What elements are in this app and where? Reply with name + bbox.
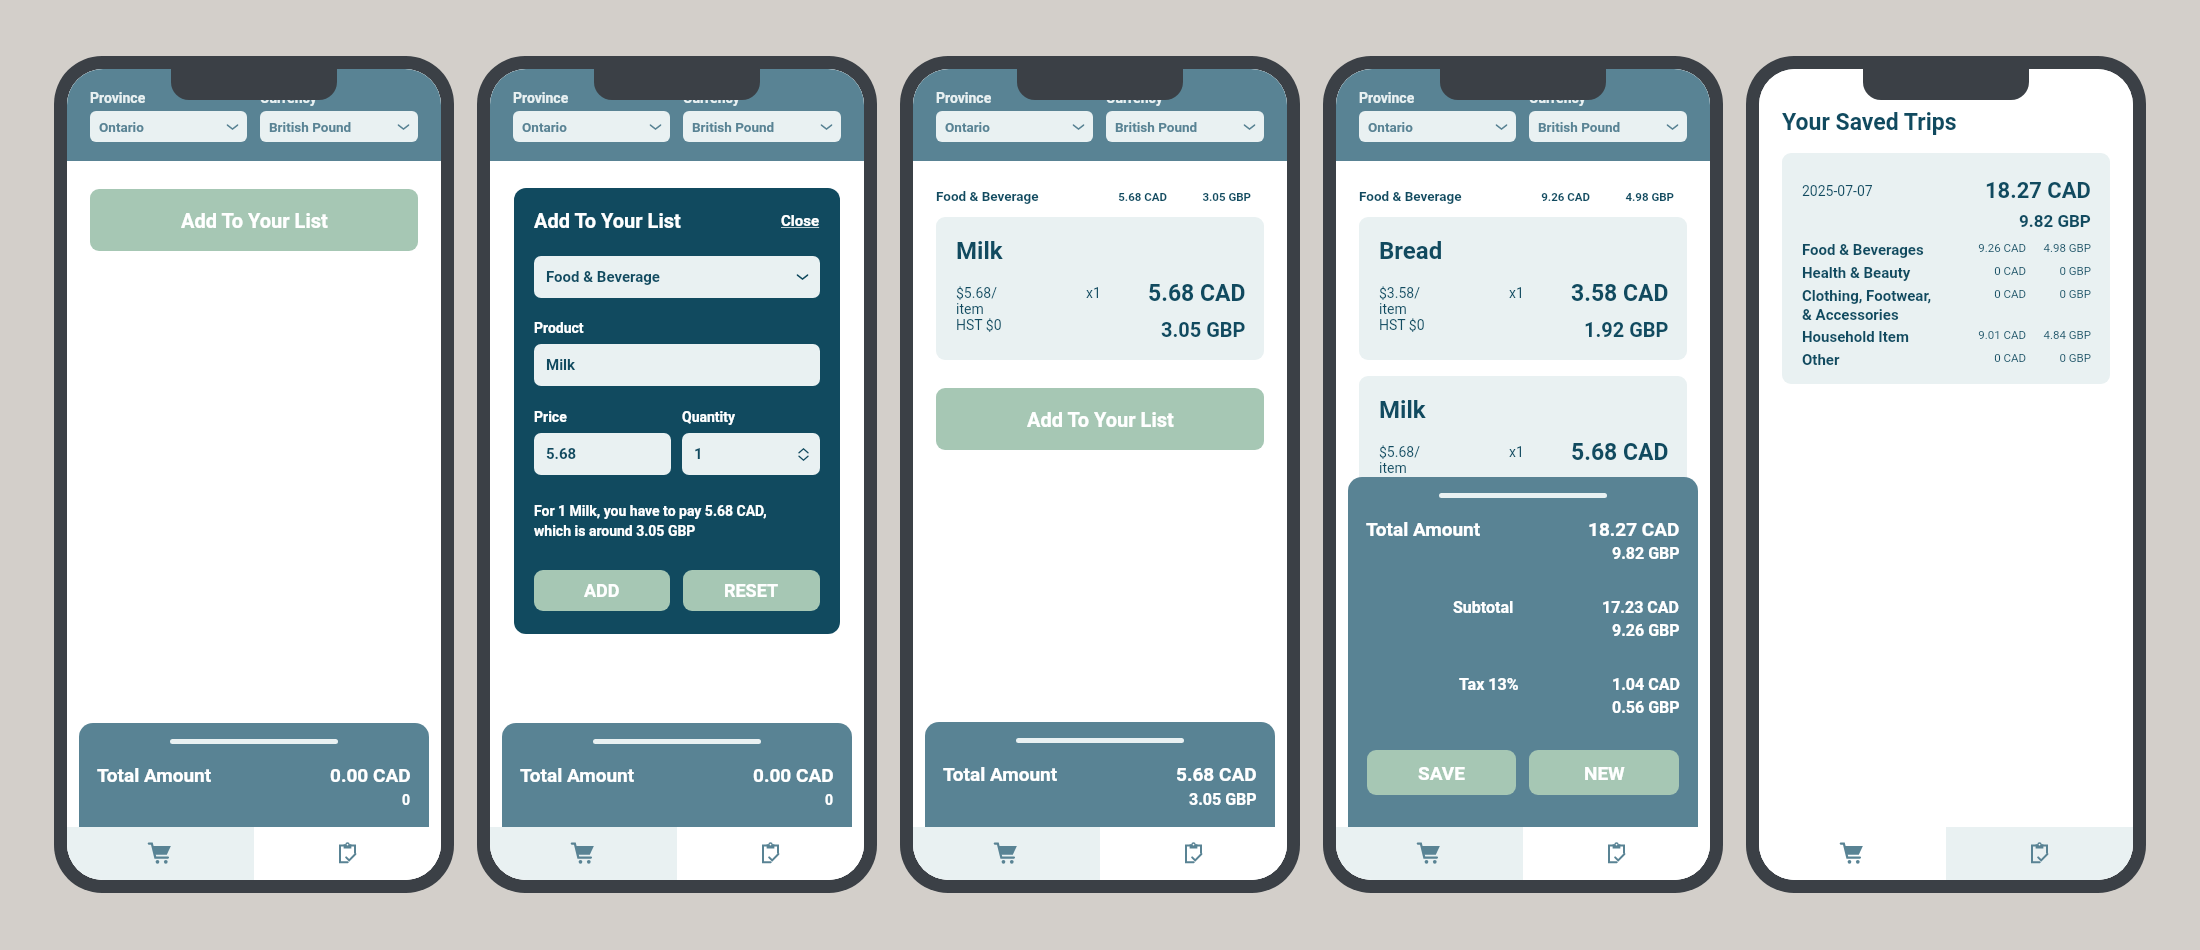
staticText: Add To Your List (181, 209, 328, 232)
staticText: Other (1802, 351, 1976, 369)
staticText: 0.00 CAD (330, 764, 411, 786)
staticText: NEW (1584, 762, 1625, 784)
staticText: 9.82 GBP (1612, 544, 1680, 563)
button[interactable]: Close (781, 212, 820, 230)
button[interactable]: RESET (683, 570, 820, 611)
staticText: Subtotal (1453, 598, 1514, 617)
button[interactable]: Saved trips (677, 827, 864, 880)
staticText: 5.68 (546, 445, 577, 463)
staticText: 9.82 GBP (2019, 211, 2091, 231)
button[interactable]: 2025-07-07 (1782, 153, 2110, 384)
button[interactable]: Add To Your List (936, 388, 1264, 450)
button[interactable]: Saved trips (254, 827, 441, 880)
staticText: 0 GBP (2043, 351, 2091, 364)
button[interactable]: SAVE (1367, 750, 1516, 795)
staticText: Bread (1379, 237, 1443, 265)
staticText: 4.98 GBP (1625, 190, 1674, 203)
button[interactable]: Cart (67, 827, 254, 880)
staticText: Tax 13% (1459, 675, 1519, 694)
staticText: Product (534, 320, 584, 336)
staticText: Clothing, Footwear, & Accessories (1802, 287, 1976, 323)
staticText: 0 CAD (1976, 287, 2026, 300)
button[interactable]: Ontario (936, 111, 1093, 142)
staticText: Province (936, 90, 992, 106)
button[interactable]: NEW (1529, 750, 1679, 795)
button[interactable]: Bread (1359, 217, 1687, 360)
button[interactable]: British Pound (683, 111, 841, 142)
button[interactable]: Cart (913, 827, 1100, 880)
button[interactable]: Ontario (90, 111, 247, 142)
staticText: Currency (683, 90, 740, 106)
button[interactable]: Saved trips (1946, 827, 2133, 880)
other: Cart (1416, 840, 1443, 867)
button[interactable]: Milk (936, 217, 1264, 360)
staticText: For 1 Milk, you have to pay 5.68 CAD, wh… (534, 503, 767, 540)
button[interactable]: 5.68 (534, 433, 671, 475)
staticText: 17.23 CAD (1602, 598, 1680, 617)
other: Cart (993, 840, 1020, 867)
staticText: Currency (1529, 90, 1586, 106)
staticText: 0 CAD (1976, 264, 2026, 277)
staticText: Your Saved Trips (1782, 109, 1957, 136)
staticText: 0 (825, 792, 834, 808)
button[interactable]: Cart (1759, 827, 1946, 880)
staticText: ADD (584, 580, 620, 601)
other: Saved trips (1181, 841, 1206, 866)
staticText: British Pound (1115, 119, 1198, 135)
staticText: Province (90, 90, 146, 106)
staticText: 3.05 GBP (1202, 190, 1251, 203)
staticText: Ontario (522, 119, 567, 135)
staticText: Province (1359, 90, 1415, 106)
button[interactable]: ADD (534, 570, 670, 611)
button[interactable]: Saved trips (1100, 827, 1287, 880)
button[interactable]: British Pound (260, 111, 418, 142)
button[interactable]: 1 (682, 433, 820, 475)
staticText: 5.68 CAD (1571, 439, 1669, 466)
other: Cart (570, 840, 597, 867)
staticText: x1 (1509, 285, 1524, 301)
staticText: Ontario (99, 119, 144, 135)
button[interactable]: British Pound (1106, 111, 1264, 142)
staticText: 5.68 CAD (1176, 763, 1257, 785)
button[interactable]: Saved trips (1523, 827, 1710, 880)
staticText: Household Item (1802, 328, 1976, 346)
staticText: 3.05 GBP (1584, 477, 1669, 500)
button[interactable]: Ontario (1359, 111, 1516, 142)
staticText: 5.68 CAD (1118, 190, 1167, 203)
button[interactable]: Cart (490, 827, 677, 880)
staticText: Total Amount (520, 764, 635, 786)
staticText: Total Amount (1366, 518, 1481, 540)
button[interactable]: Food & Beverage (534, 256, 820, 298)
other: Cart (1839, 840, 1866, 867)
other: Saved trips (758, 841, 783, 866)
staticText: 1 (694, 445, 703, 463)
staticText: 1.92 GBP (1584, 318, 1669, 341)
staticText: 4.98 GBP (2043, 241, 2091, 254)
staticText: British Pound (692, 119, 775, 135)
staticText: 5.68 CAD (1148, 280, 1246, 307)
staticText: 1.04 CAD (1612, 675, 1680, 694)
other: Saved trips (335, 841, 360, 866)
staticText: $5.68/ item HST $0 (956, 285, 1002, 333)
other: Cart (147, 840, 174, 867)
staticText: Milk (1379, 396, 1426, 424)
staticText: British Pound (269, 119, 352, 135)
staticText: 9.26 CAD (1541, 190, 1590, 203)
staticText: Quantity (682, 409, 736, 425)
button[interactable]: Cart (1336, 827, 1523, 880)
staticText: Ontario (1368, 119, 1413, 135)
button[interactable]: British Pound (1529, 111, 1687, 142)
staticText: Milk (956, 237, 1003, 265)
button[interactable]: Milk (1359, 376, 1687, 519)
button[interactable]: Add To Your List (90, 189, 418, 251)
staticText: Add To Your List (534, 209, 681, 232)
staticText: Total Amount (943, 763, 1058, 785)
staticText: 0 CAD (1976, 351, 2026, 364)
staticText: Health & Beauty (1802, 264, 1976, 282)
staticText: Milk (546, 356, 576, 374)
staticText: 0 (402, 792, 411, 808)
other: Saved trips (2027, 841, 2052, 866)
staticText: 0 GBP (2043, 264, 2091, 277)
button[interactable]: Milk (534, 344, 820, 386)
button[interactable]: Ontario (513, 111, 670, 142)
